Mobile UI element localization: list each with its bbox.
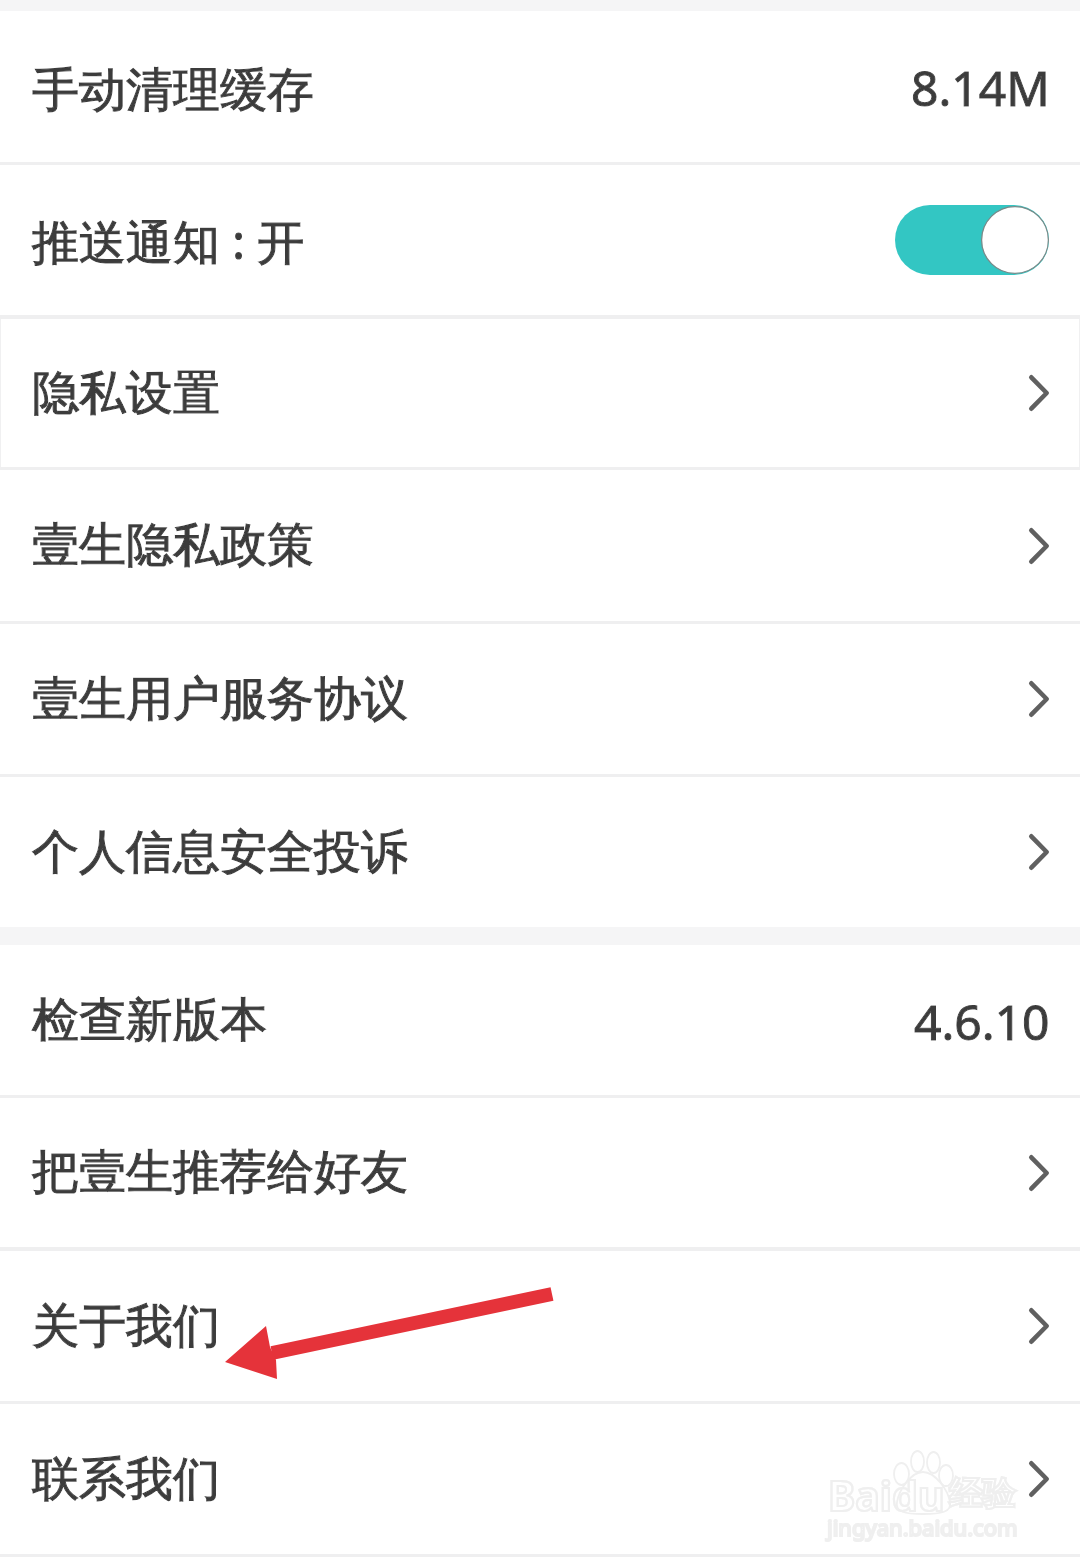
staticText: 个人信息安全投诉: [32, 823, 408, 882]
staticText: 经验: [949, 1473, 1015, 1515]
other: 进入: [1014, 1449, 1064, 1509]
staticText: 推送通知 : 开: [32, 209, 305, 273]
button[interactable]: 联系我们: [0, 1404, 1080, 1554]
staticText: 8.14M: [911, 55, 1050, 120]
staticText: 4.6.10: [914, 989, 1050, 1054]
staticText: 检查新版本: [32, 991, 267, 1050]
staticText: 关于我们: [32, 1297, 220, 1356]
button[interactable]: 隐私设置: [0, 319, 1080, 467]
staticText: 8.14M: [911, 55, 1050, 120]
staticText: 隐私设置: [32, 364, 220, 423]
button[interactable]: 个人信息安全投诉: [0, 777, 1080, 927]
staticText: 推送通知 : 开: [32, 209, 305, 273]
staticText: 检查新版本: [32, 991, 267, 1050]
staticText: 壹生用户服务协议: [32, 670, 408, 729]
staticText: 把壹生推荐给好友: [32, 1143, 408, 1202]
staticText: 把壹生推荐给好友: [32, 1143, 408, 1202]
staticText: 个人信息安全投诉: [32, 823, 408, 882]
button[interactable]: 检查新版本: [0, 945, 1080, 1095]
button[interactable]: 壹生隐私政策: [0, 470, 1080, 621]
staticText: 隐私设置: [32, 364, 220, 423]
other: 进入: [1014, 1143, 1064, 1203]
staticText: 4.6.10: [914, 989, 1050, 1054]
other: 进入: [1014, 669, 1064, 729]
staticText: 关于我们: [32, 1297, 220, 1356]
other: 进入: [1014, 822, 1064, 882]
button[interactable]: 推送通知开关: [895, 205, 1049, 275]
button[interactable]: 关于我们: [0, 1251, 1080, 1401]
other: 进入: [1014, 363, 1064, 423]
staticText: 联系我们: [32, 1450, 220, 1509]
other: 进入: [1014, 1296, 1064, 1356]
staticText: Baidu: [828, 1467, 945, 1523]
staticText: jingyan.baidu.com: [827, 1512, 1018, 1542]
staticText: 联系我们: [32, 1450, 220, 1509]
button[interactable]: 推送通知 : 开: [0, 165, 1080, 315]
staticText: 壹生隐私政策: [32, 516, 314, 575]
staticText: 壹生隐私政策: [32, 516, 314, 575]
button[interactable]: 手动清理缓存: [0, 11, 1080, 162]
staticText: 手动清理缓存: [32, 61, 314, 120]
button[interactable]: 把壹生推荐给好友: [0, 1098, 1080, 1247]
button[interactable]: 壹生用户服务协议: [0, 624, 1080, 774]
other: 进入: [1014, 516, 1064, 576]
staticText: 壹生用户服务协议: [32, 670, 408, 729]
staticText: 手动清理缓存: [32, 61, 314, 120]
